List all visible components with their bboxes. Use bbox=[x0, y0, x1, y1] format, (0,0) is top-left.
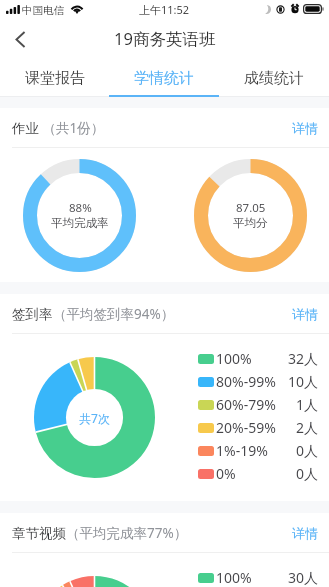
staticText: 32人 bbox=[288, 349, 319, 368]
staticText: 课堂报告 bbox=[25, 69, 85, 88]
staticText: 平均分 bbox=[233, 216, 268, 230]
staticText: 作业 bbox=[12, 120, 39, 137]
staticText: 1%-19% bbox=[216, 441, 268, 460]
staticText: 签到率 bbox=[12, 306, 53, 323]
staticText: 19商务英语班 bbox=[114, 27, 216, 50]
staticText: 平均完成率 bbox=[51, 216, 109, 230]
staticText: 成绩统计 bbox=[244, 69, 304, 88]
staticText: 60%-79% bbox=[216, 395, 276, 414]
staticText: 20%-59% bbox=[216, 418, 276, 437]
button[interactable]: 课堂报告 bbox=[0, 56, 109, 97]
staticText: 87.05 bbox=[236, 200, 266, 216]
staticText: 0% bbox=[216, 464, 236, 483]
staticText: 100% bbox=[216, 349, 252, 368]
button[interactable]: 详情 bbox=[290, 301, 320, 327]
staticText: 0人 bbox=[296, 464, 319, 483]
button[interactable]: 成绩统计 bbox=[219, 56, 329, 97]
staticText: 100% bbox=[216, 568, 252, 587]
staticText: （共1份） bbox=[39, 119, 105, 137]
staticText: 学情统计 bbox=[134, 69, 194, 88]
button[interactable]: 详情 bbox=[290, 115, 320, 141]
button[interactable]: 学情统计 bbox=[109, 56, 219, 97]
staticText: 共7次 bbox=[79, 410, 110, 426]
staticText: （平均签到率94%） bbox=[53, 305, 175, 323]
staticText: 88% bbox=[69, 200, 92, 216]
staticText: 1人 bbox=[296, 395, 319, 414]
staticText: 30人 bbox=[288, 568, 319, 587]
staticText: 上午11:52 bbox=[139, 2, 190, 17]
staticText: 章节视频 bbox=[12, 525, 66, 542]
staticText: 10人 bbox=[288, 372, 319, 391]
staticText: 详情 bbox=[292, 306, 318, 322]
staticText: 2人 bbox=[296, 418, 319, 437]
staticText: 详情 bbox=[292, 120, 318, 136]
button[interactable]: 详情 bbox=[290, 520, 320, 546]
button[interactable]: Back bbox=[0, 22, 40, 56]
staticText: 详情 bbox=[292, 525, 318, 541]
staticText: 80%-99% bbox=[216, 372, 276, 391]
staticText: 0人 bbox=[296, 441, 319, 460]
staticText: 中国电信 bbox=[22, 4, 64, 17]
staticText: （平均完成率77%） bbox=[66, 524, 188, 542]
